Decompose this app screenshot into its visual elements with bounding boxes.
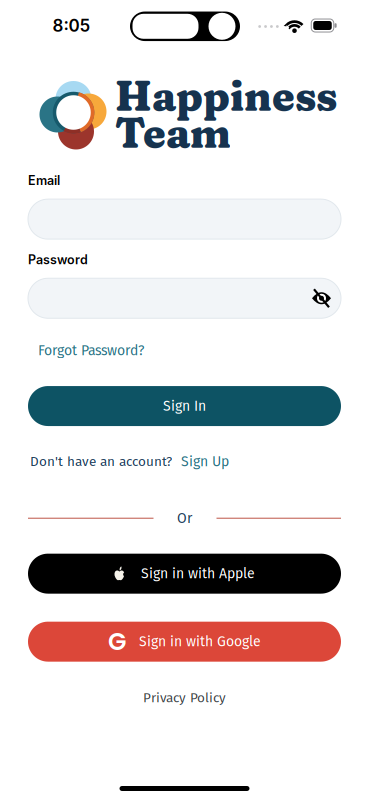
staticText: Sign in with Apple [141, 565, 255, 582]
staticText: G [108, 625, 126, 658]
staticText: Forgot Password? [38, 342, 144, 359]
button[interactable]: Show password [312, 291, 331, 305]
staticText: Email [28, 173, 60, 188]
staticText: Don't have an account? [30, 453, 172, 469]
button[interactable]: Sign in with Apple [28, 554, 341, 594]
staticText: Sign in with Google [139, 633, 261, 650]
staticText: Privacy Policy [143, 690, 226, 706]
staticText: 8:05 [52, 15, 90, 36]
staticText: Password [28, 252, 88, 267]
button[interactable]: Sign Up [181, 453, 229, 470]
staticText: Happiness [115, 70, 337, 121]
staticText: Sign In [163, 398, 206, 414]
staticText: Team [115, 107, 231, 158]
button[interactable]: Sign In [28, 386, 341, 426]
button[interactable]: Password [28, 278, 341, 318]
button[interactable]: Forgot Password? [38, 342, 144, 359]
button[interactable]: Privacy Policy [143, 690, 226, 706]
button[interactable]: G [28, 622, 341, 662]
staticText: Or [177, 510, 192, 527]
staticText: Sign Up [181, 453, 229, 470]
